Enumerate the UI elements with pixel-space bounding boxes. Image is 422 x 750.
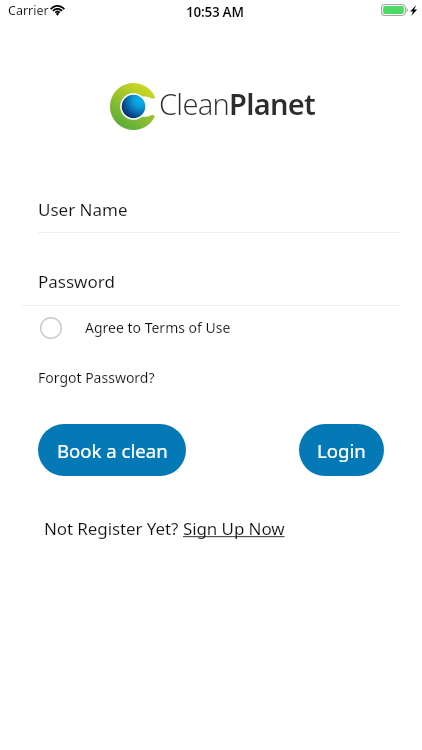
staticText: Carrier [8,2,49,19]
button[interactable]: Sign Up Now [183,517,285,540]
button[interactable]: Forgot Password? [38,368,155,387]
button[interactable]: Password [21,264,401,305]
staticText: Password [38,270,115,293]
staticText: Sign Up Now [183,517,285,540]
button[interactable]: Agree to Terms of Use [40,316,231,339]
staticText: Agree to Terms of Use [85,318,231,337]
staticText: 10:53 AM [186,3,244,21]
staticText: User Name [38,198,128,221]
button[interactable]: Book a clean [38,424,186,476]
button[interactable]: User Name [38,192,401,233]
staticText: Not Register Yet? [44,517,183,540]
staticText: Forgot Password? [38,368,155,387]
button[interactable]: Login [299,424,384,476]
staticText: Login [317,438,366,463]
staticText: CleanPlanet [159,84,316,123]
staticText: Book a clean [57,438,168,463]
